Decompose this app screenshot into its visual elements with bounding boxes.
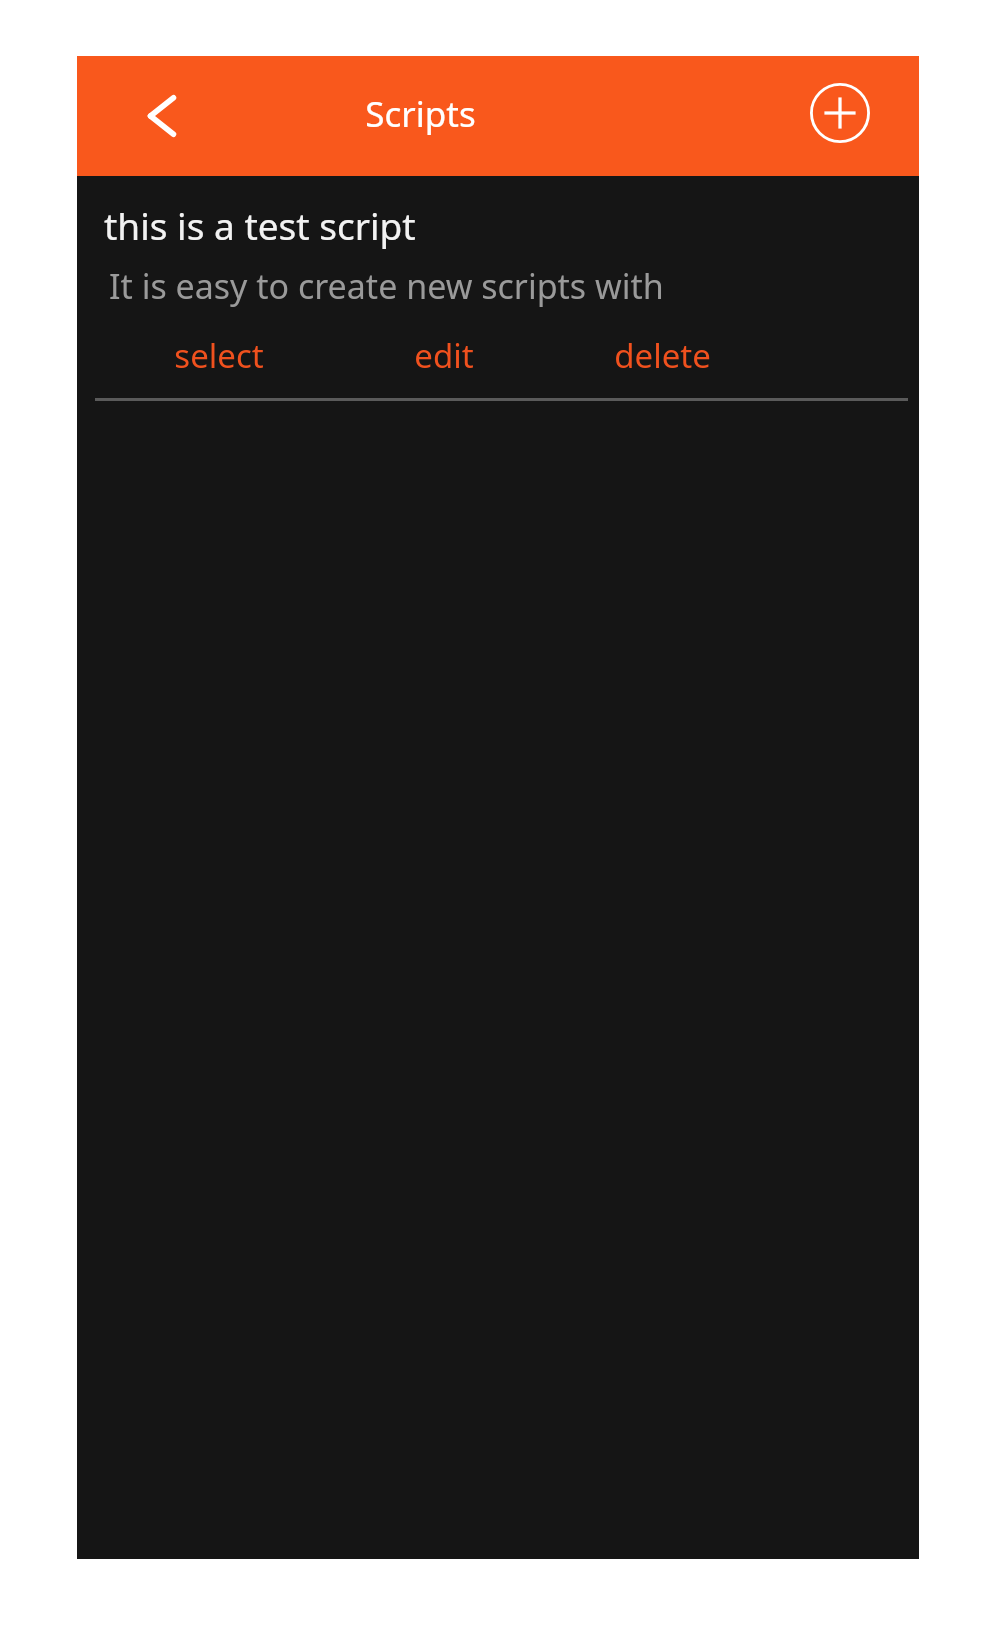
- button[interactable]: Back: [117, 71, 207, 161]
- staticText: this is a test script: [104, 200, 416, 250]
- staticText: It is easy to create new scripts with: [109, 263, 664, 309]
- button[interactable]: edit: [354, 325, 534, 385]
- button[interactable]: select: [129, 325, 309, 385]
- staticText: Scripts: [365, 90, 476, 138]
- button[interactable]: delete: [572, 325, 752, 385]
- staticText: edit: [414, 333, 474, 378]
- staticText: delete: [614, 333, 711, 378]
- button[interactable]: Add script: [795, 68, 885, 158]
- staticText: select: [174, 333, 264, 378]
- button[interactable]: this is a test script: [77, 176, 919, 401]
